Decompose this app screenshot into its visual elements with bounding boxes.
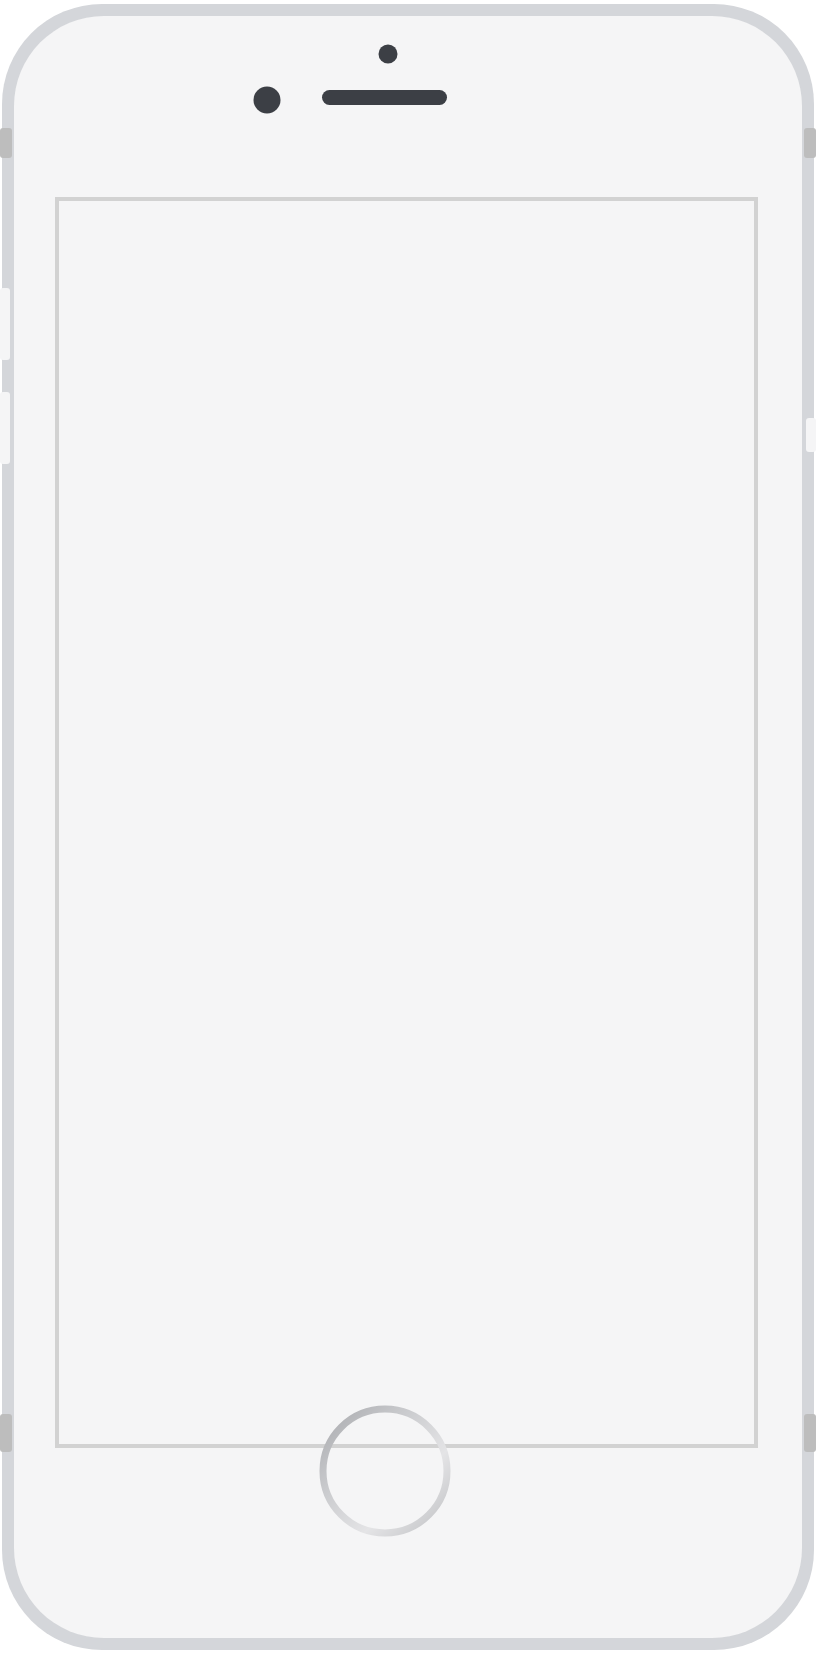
button[interactable]: Phone device mockup bbox=[0, 0, 816, 1654]
